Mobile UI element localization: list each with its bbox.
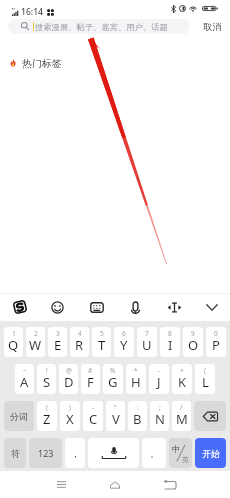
button[interactable]: Back [142,471,196,498]
staticText: 1 [12,329,16,338]
staticText: K [178,373,187,391]
button[interactable]: Home [88,471,142,498]
button[interactable]: Voice input [121,293,149,321]
staticText: I [168,336,173,354]
staticText: 搜索漫展、帖子、嘉宾、用户、话题 [35,22,168,32]
button[interactable]: Move cursor [160,293,188,321]
button[interactable]: 123 [29,438,62,468]
button[interactable]: - [149,364,169,394]
button[interactable]: " [106,401,125,431]
button[interactable]: ， [65,438,85,468]
staticText: ~ [23,366,27,375]
staticText: * [134,366,138,375]
staticText: F [87,373,94,391]
staticText: C [89,410,98,428]
button[interactable]: 取消 [195,19,230,34]
button[interactable]: ; [150,401,169,431]
button[interactable]: 5 [92,327,111,357]
button[interactable]: 分词 [4,401,34,431]
staticText: 5 [100,329,104,338]
button[interactable]: Sogou input [6,293,34,321]
button[interactable]: ) [60,401,80,431]
staticText: R [75,336,84,354]
button[interactable]: Keyboard layout [83,293,111,321]
staticText: H [131,373,141,391]
button[interactable]: # [81,364,100,394]
staticText: 。 [150,448,159,459]
button[interactable]: 7 [137,327,157,357]
button[interactable]: 符 [4,438,26,468]
staticText: ) [69,403,71,412]
staticText: A [20,373,29,391]
staticText: : [137,403,139,412]
staticText: ! [46,366,48,375]
button[interactable]: 0 [206,327,226,357]
staticText: S [43,373,51,391]
staticText: ( [204,366,206,375]
button[interactable]: Space [88,438,139,468]
staticText: % [110,366,116,375]
button[interactable]: 6 [114,327,134,357]
staticText: 符 [11,448,20,459]
button[interactable]: Emoji [43,293,71,321]
button[interactable]: @ [59,364,78,394]
button[interactable]: / [172,401,191,431]
staticText: 3 [56,329,60,338]
button[interactable]: Backspace [194,401,226,431]
button[interactable]: 搜索漫展、帖子、嘉宾、用户、话题 [8,19,190,34]
button[interactable]: ( [37,401,57,431]
staticText: " [114,403,117,412]
staticText: - [92,403,95,412]
staticText: 热门标签 [22,57,62,69]
button[interactable]: ! [37,364,56,394]
button[interactable]: ( [195,364,215,394]
staticText: 开始 [202,448,220,459]
staticText: 16:14 [21,6,44,18]
staticText: 分词 [10,411,28,422]
button[interactable]: 。 [142,438,166,468]
staticText: 0 [214,329,218,338]
button[interactable]: 中 [169,438,192,468]
staticText: U [142,336,152,354]
button[interactable]: 3 [48,327,67,357]
staticText: 123 [38,447,54,459]
staticText: G [108,373,118,391]
staticText: E [54,336,62,354]
button[interactable]: 4 [70,327,89,357]
staticText: ， [71,448,80,459]
staticText: Z [43,410,51,428]
staticText: 9 [191,329,195,338]
button[interactable]: 1 [4,327,23,357]
staticText: + [180,366,184,375]
staticText: V [112,410,120,428]
staticText: Y [120,336,128,354]
staticText: B [133,410,142,428]
button[interactable]: 2 [26,327,45,357]
button[interactable]: : [128,401,147,431]
button[interactable]: Hide keyboard [198,293,226,321]
staticText: W [29,336,42,354]
staticText: 8 [168,329,172,338]
staticText: - [158,366,161,375]
staticText: Q [8,336,19,354]
staticText: ; [159,403,161,412]
button[interactable]: ~ [15,364,34,394]
button[interactable]: * [126,364,146,394]
button[interactable]: 8 [160,327,180,357]
button[interactable]: + [172,364,192,394]
button[interactable]: 9 [183,327,203,357]
staticText: @ [66,366,72,375]
staticText: O [188,336,199,354]
staticText: L [202,373,209,391]
staticText: 英 [182,455,189,464]
button[interactable]: 开始 [195,438,226,468]
button[interactable]: Recent apps [34,471,88,498]
button[interactable]: % [103,364,123,394]
staticText: 取消 [203,21,222,33]
staticText: ( [46,403,48,412]
staticText: 7 [145,329,149,338]
button[interactable]: - [83,401,103,431]
staticText: 6 [122,329,126,338]
staticText: 2 [34,329,38,338]
staticText: # [88,366,93,375]
